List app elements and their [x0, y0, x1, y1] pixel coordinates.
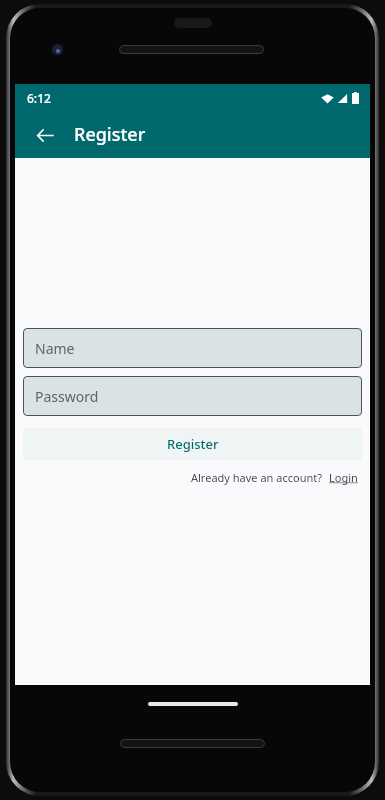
staticText: Login	[329, 470, 358, 485]
staticText: Password	[35, 387, 99, 406]
button[interactable]: Back	[27, 117, 63, 153]
staticText: Register	[74, 122, 146, 147]
staticText: Already have an account?	[191, 470, 322, 485]
button[interactable]: Name	[23, 328, 362, 368]
button[interactable]: Register	[23, 428, 362, 460]
button[interactable]: Password	[23, 376, 362, 416]
staticText: 6:12	[27, 90, 51, 106]
staticText: Register	[167, 435, 219, 453]
staticText: Name	[35, 339, 75, 358]
button[interactable]: Login	[329, 470, 358, 485]
